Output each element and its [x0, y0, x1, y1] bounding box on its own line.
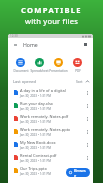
staticText: Run your day.xlsx: [20, 101, 53, 106]
staticText: Jan 30, 2023 • 1:31 PM: [20, 94, 51, 98]
staticText: Home: [23, 41, 38, 48]
button[interactable]: Work remotely. Notes.pptx: [8, 125, 93, 138]
staticText: Work remotely. Notes.pptx: [20, 127, 71, 132]
button[interactable]: Open navigation menu: [12, 40, 19, 49]
button[interactable]: PDF: [68, 51, 87, 76]
staticText: A day in a life of a digital nomad.docx: [20, 88, 84, 93]
staticText: Presentation: [49, 69, 68, 73]
button[interactable]: More options: [84, 153, 90, 163]
staticText: Browse: [74, 168, 87, 177]
staticText: Jan 30, 2023 • 1:31 PM: [20, 107, 51, 111]
button[interactable]: Document: [11, 51, 30, 76]
staticText: Jan 30, 2023 • 1:31 PM: [20, 133, 51, 137]
button[interactable]: A day in a life of a digital nomad.docx: [8, 86, 93, 99]
button[interactable]: More options: [84, 88, 90, 98]
button[interactable]: Our Trips.pptx: [8, 164, 93, 177]
staticText: My New Book.docx: [20, 140, 56, 145]
staticText: Sort: [76, 79, 83, 84]
button[interactable]: More options: [84, 140, 90, 150]
button[interactable]: My New Book.docx: [8, 138, 93, 151]
button[interactable]: Sort: [76, 79, 89, 84]
button[interactable]: Presentation: [49, 51, 68, 76]
button[interactable]: Rental Contract.pdf: [8, 151, 93, 164]
button[interactable]: More options: [84, 101, 90, 111]
button[interactable]: Browse: [66, 168, 90, 177]
staticText: Our Trips.pptx: [20, 166, 47, 171]
staticText: PDF: [75, 69, 81, 73]
staticText: Jan 30, 2023 • 1:31 PM: [20, 120, 51, 124]
staticText: Spreadsheet: [30, 69, 49, 73]
staticText: Jan 30, 2023 • 1:31 PM: [20, 172, 51, 176]
button[interactable]: More options: [84, 166, 90, 176]
staticText: Last opened: [13, 79, 37, 84]
staticText: Work remotely. Notes.pdf: [20, 114, 69, 119]
staticText: with your files: [25, 16, 79, 26]
button[interactable]: More options: [84, 114, 90, 124]
button[interactable]: Run your day.xlsx: [8, 99, 93, 112]
staticText: Jan 30, 2023 • 1:31 PM: [20, 159, 51, 163]
staticText: 12:30: [10, 34, 18, 38]
button[interactable]: Switch to grid view: [82, 40, 89, 49]
button[interactable]: Spreadsheet: [30, 51, 49, 76]
staticText: Jan 30, 2023 • 1:31 PM: [20, 146, 51, 150]
staticText: Rental Contract.pdf: [20, 153, 57, 158]
staticText: COMPATIBLE: [21, 5, 82, 15]
button[interactable]: More options: [84, 127, 90, 137]
staticText: Document: [13, 69, 29, 73]
button[interactable]: Work remotely. Notes.pdf: [8, 112, 93, 125]
